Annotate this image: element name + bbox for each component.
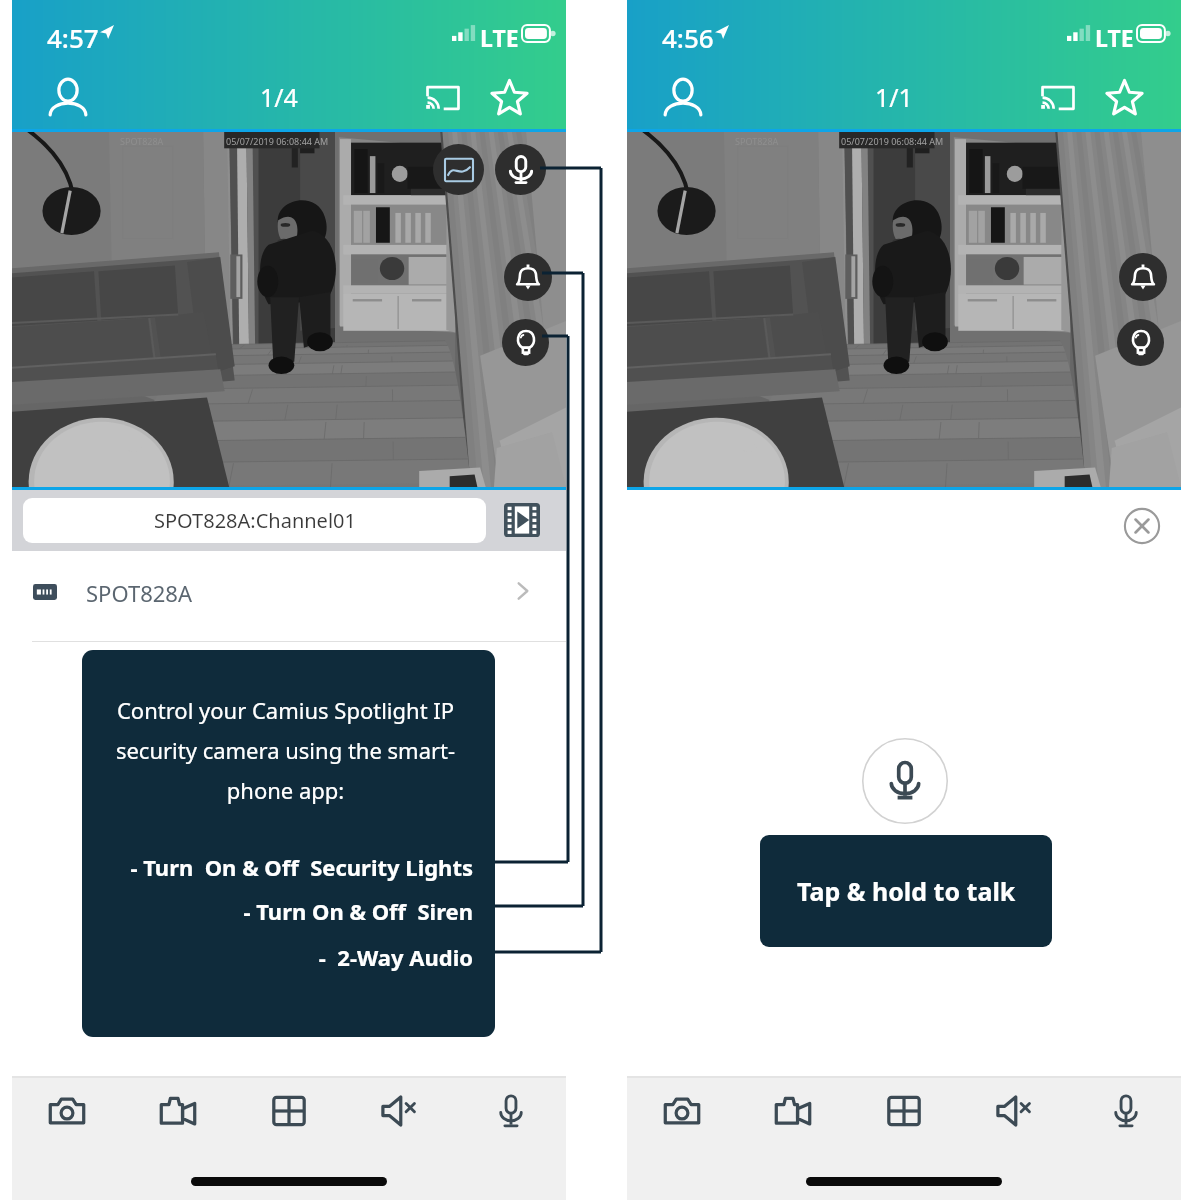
button[interactable]: Account (664, 78, 702, 116)
button[interactable]: Account (49, 78, 87, 116)
staticText: - Turn On & Off Security Lights (98, 852, 473, 882)
staticText: LTE (480, 22, 519, 53)
button[interactable]: Microphone (861, 737, 949, 825)
button[interactable]: Cast (1040, 80, 1076, 116)
button[interactable]: Record video (737, 1076, 848, 1146)
button[interactable]: Talk (455, 1076, 566, 1146)
staticText: 05/07/2019 06:08:44 AM (841, 135, 944, 147)
staticText: 1/4 (260, 80, 298, 114)
button[interactable]: Light (502, 319, 549, 366)
button[interactable]: Light (1117, 319, 1164, 366)
staticText: security camera using the smart- (98, 735, 473, 765)
staticText: SPOT828A (86, 578, 192, 608)
button[interactable]: Snapshot (12, 1076, 122, 1146)
button[interactable]: Mute (959, 1076, 1070, 1146)
staticText: 05/07/2019 06:08:44 AM (226, 135, 329, 147)
button[interactable]: SPOT828A:Channel01 (23, 498, 486, 543)
staticText: LTE (1095, 22, 1134, 53)
button[interactable]: Grid layout (233, 1076, 344, 1146)
staticText: Control your Camius Spotlight IP (98, 695, 473, 725)
button[interactable]: Close (1123, 507, 1161, 545)
button[interactable]: Favorite (1106, 79, 1143, 116)
staticText: SPOT828A (120, 135, 164, 147)
button[interactable]: Snapshot (627, 1076, 737, 1146)
button[interactable]: Tap & hold to talk (760, 835, 1052, 947)
button[interactable]: Talk (495, 144, 546, 195)
button[interactable]: Favorite (491, 79, 528, 116)
staticText: 1/1 (875, 80, 913, 114)
staticText: - Turn On & Off Siren (98, 896, 473, 926)
button[interactable]: Record video (122, 1076, 233, 1146)
button[interactable]: Snapshot (433, 144, 484, 195)
staticText: Tap & hold to talk (797, 874, 1016, 908)
button[interactable]: SPOT828A (12, 551, 566, 641)
staticText: - 2-Way Audio (98, 942, 473, 972)
button[interactable]: Mute (344, 1076, 455, 1146)
staticText: 4:57 (47, 20, 99, 55)
button[interactable]: Cast (425, 80, 461, 116)
staticText: SPOT828A:Channel01 (154, 507, 356, 534)
button[interactable]: Playback (504, 503, 540, 537)
button[interactable]: Siren (1119, 253, 1167, 301)
staticText: SPOT828A (735, 135, 779, 147)
staticText: phone app: (98, 775, 473, 805)
button[interactable]: Talk (1070, 1076, 1181, 1146)
button[interactable]: Siren (504, 253, 552, 301)
button[interactable]: Grid layout (848, 1076, 959, 1146)
staticText: 4:56 (662, 20, 714, 55)
